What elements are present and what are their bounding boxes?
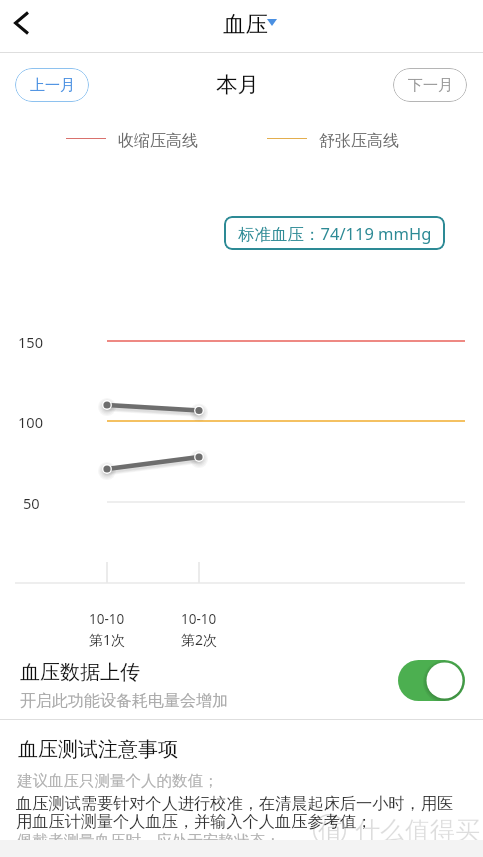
staticText: 开启此功能设备耗电量会增加 xyxy=(20,691,228,711)
staticText: 第2次 xyxy=(181,630,218,649)
staticText: 血压 xyxy=(223,10,268,38)
button[interactable]: Toggle blood pressure upload xyxy=(398,660,465,701)
button[interactable]: 下一月 xyxy=(393,68,467,102)
staticText: 150 xyxy=(18,332,44,352)
button[interactable]: Back xyxy=(0,0,48,52)
staticText: 血压测试注意事项 xyxy=(18,737,178,762)
staticText: 血压测试需要针对个人进行校准，在清晨起床后一小时，用医用血压计测量个人血压，并输… xyxy=(16,793,457,832)
staticText: 值 xyxy=(318,816,343,847)
staticText: 佩戴者测量血压时，应处于安静状态； xyxy=(17,831,281,851)
button[interactable] xyxy=(0,646,483,718)
staticText: 上一月 xyxy=(30,76,75,95)
button[interactable]: 标准血压：74/119 mmHg xyxy=(224,216,445,250)
staticText: 10-10 xyxy=(181,610,217,628)
staticText: 第1次 xyxy=(89,630,126,649)
staticText: 下一月 xyxy=(408,76,453,95)
staticText: 标准血压：74/119 mmHg xyxy=(238,222,432,245)
staticText: 本月 xyxy=(216,71,259,98)
staticText: 10-10 xyxy=(89,610,125,628)
staticText: 什么值得买 xyxy=(355,815,480,846)
button[interactable]: 上一月 xyxy=(15,68,89,102)
staticText: 舒张压高线 xyxy=(319,131,399,151)
staticText: 建议血压只测量个人的数值； xyxy=(17,771,219,791)
staticText: 100 xyxy=(18,412,44,432)
staticText: 血压数据上传 xyxy=(20,660,140,685)
staticText: 收缩压高线 xyxy=(118,131,198,151)
staticText: 50 xyxy=(23,493,40,513)
